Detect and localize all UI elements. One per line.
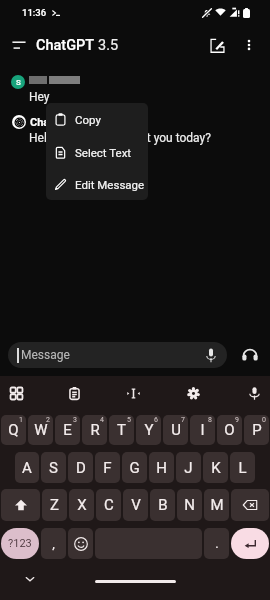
staticText: N — [184, 496, 195, 514]
staticText: I — [200, 421, 205, 439]
button[interactable]: M — [204, 489, 229, 521]
staticText: Q — [8, 421, 19, 439]
button[interactable]: Copy — [46, 103, 148, 136]
button[interactable]: Select Text — [46, 136, 148, 169]
staticText: 5 — [127, 416, 131, 424]
staticText: F — [103, 459, 112, 477]
button[interactable]: J — [176, 452, 201, 483]
button[interactable]: Apps — [3, 380, 29, 406]
staticText: 3 — [73, 416, 77, 424]
button[interactable]: R — [82, 415, 107, 445]
staticText: Select Text — [75, 146, 132, 159]
button[interactable]: ?123 — [1, 528, 39, 559]
button[interactable]: , — [41, 528, 66, 559]
staticText: T — [117, 421, 126, 439]
button[interactable]: Hide keyboard — [20, 569, 40, 589]
button[interactable]: Q — [1, 415, 26, 445]
staticText: U — [171, 421, 181, 439]
button[interactable]: Voice input — [202, 346, 220, 364]
staticText: O — [224, 421, 235, 439]
staticText: D — [76, 459, 86, 477]
button[interactable]: Backspace — [231, 489, 269, 521]
button[interactable]: C — [96, 489, 121, 521]
staticText: 6 — [154, 416, 158, 424]
staticText: 3.5 — [98, 37, 119, 54]
staticText: V — [131, 496, 141, 514]
staticText: 7 — [181, 416, 185, 424]
button[interactable]: Text editing — [120, 380, 146, 406]
staticText: ChatGPT — [30, 116, 75, 129]
button[interactable]: B — [150, 489, 175, 521]
staticText: , — [52, 536, 55, 551]
staticText: E — [63, 421, 72, 439]
button[interactable]: Message — [8, 342, 227, 368]
button[interactable]: Voice conversation — [238, 343, 262, 367]
staticText: J — [184, 459, 193, 477]
staticText: A — [22, 459, 32, 477]
button[interactable]: G — [122, 452, 147, 483]
staticText: 9 — [235, 416, 239, 424]
button[interactable]: Emoji — [68, 528, 93, 559]
button[interactable]: Voice input — [241, 380, 267, 406]
button[interactable]: Y — [136, 415, 161, 445]
staticText: S — [49, 459, 58, 477]
button[interactable]: New chat — [203, 31, 231, 59]
staticText: Hello! How can I assist you today? — [29, 131, 211, 145]
button[interactable]: N — [177, 489, 202, 521]
staticText: M — [210, 496, 224, 514]
button[interactable]: A — [15, 452, 39, 483]
button[interactable]: I — [190, 415, 215, 445]
button[interactable]: U — [163, 415, 188, 445]
staticText: 2 — [46, 416, 50, 424]
button[interactable]: Clipboard — [61, 380, 87, 406]
staticText: 8 — [208, 416, 212, 424]
button[interactable]: Enter — [231, 528, 269, 559]
button[interactable]: T — [109, 415, 134, 445]
staticText: Copy — [75, 113, 101, 126]
staticText: R — [90, 421, 100, 439]
staticText: Hey — [29, 90, 50, 104]
staticText: K — [211, 459, 221, 477]
staticText: . — [215, 536, 219, 551]
staticText: 4 — [100, 416, 104, 424]
button[interactable]: D — [68, 452, 93, 483]
button[interactable]: W — [28, 415, 53, 445]
staticText: P — [252, 421, 262, 439]
staticText: Y — [144, 421, 154, 439]
staticText: W — [34, 421, 48, 439]
staticText: 11:36 — [22, 7, 47, 18]
button[interactable]: O — [217, 415, 242, 445]
staticText: Message — [21, 348, 70, 362]
button[interactable]: V — [123, 489, 148, 521]
staticText: X — [77, 496, 87, 514]
staticText: L — [238, 459, 247, 477]
button[interactable]: F — [95, 452, 120, 483]
button[interactable]: Z — [42, 489, 67, 521]
staticText: Z — [50, 496, 59, 514]
staticText: 1 — [19, 416, 23, 424]
button[interactable]: H — [149, 452, 174, 483]
button[interactable]: P — [244, 415, 269, 445]
button[interactable]: S — [41, 452, 66, 483]
button[interactable]: X — [69, 489, 94, 521]
staticText: B — [158, 496, 168, 514]
staticText: S — [16, 78, 21, 87]
staticText: H — [156, 459, 167, 477]
staticText: G — [129, 459, 140, 477]
staticText: Edit Message — [75, 178, 145, 191]
button[interactable]: . — [204, 528, 229, 559]
button[interactable]: More options — [235, 31, 263, 59]
button[interactable]: L — [230, 452, 255, 483]
staticText: 0 — [262, 416, 266, 424]
button[interactable]: E — [55, 415, 80, 445]
staticText: C — [104, 496, 114, 514]
button[interactable]: Edit Message — [46, 169, 148, 200]
staticText: ?123 — [8, 537, 32, 550]
button[interactable]: K — [203, 452, 228, 483]
button[interactable]: Open navigation menu — [6, 32, 32, 58]
button[interactable]: Shift — [1, 489, 40, 521]
button[interactable]: Keyboard settings — [180, 380, 206, 406]
staticText: ChatGPT — [36, 37, 98, 54]
